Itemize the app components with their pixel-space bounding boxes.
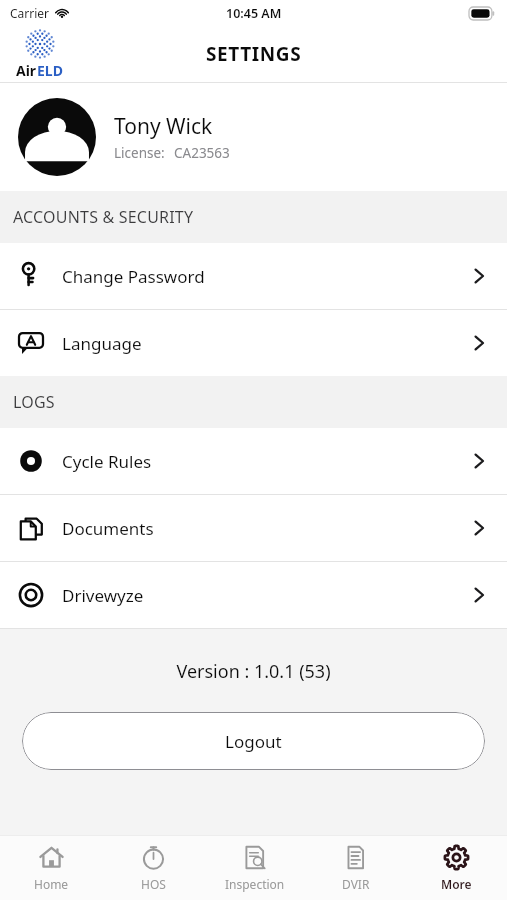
- staticText: Carrier: [10, 5, 50, 21]
- staticText: ACCOUNTS & SECURITY: [13, 206, 194, 228]
- button[interactable]: Change Password: [0, 243, 507, 309]
- staticText: License:: [114, 144, 165, 162]
- staticText: LOGS: [13, 391, 55, 413]
- staticText: ELD: [37, 61, 63, 80]
- staticText: More: [441, 876, 472, 892]
- button[interactable]: Language: [0, 310, 507, 376]
- staticText: Tony Wick: [114, 112, 213, 141]
- staticText: Logout: [225, 730, 282, 753]
- staticText: Home: [34, 876, 69, 892]
- staticText: Version : 1.0.1 (53): [176, 659, 331, 684]
- staticText: Cycle Rules: [62, 450, 152, 473]
- staticText: Drivewyze: [62, 584, 144, 607]
- button[interactable]: HOS: [102, 836, 204, 900]
- staticText: SETTINGS: [206, 41, 302, 67]
- staticText: Inspection: [225, 876, 285, 892]
- button[interactable]: Inspection: [204, 836, 305, 900]
- button[interactable]: Home: [0, 836, 102, 900]
- button[interactable]: Logout: [22, 712, 485, 770]
- button[interactable]: Documents: [0, 495, 507, 561]
- button[interactable]: DVIR: [305, 836, 406, 900]
- button[interactable]: Drivewyze: [0, 562, 507, 628]
- staticText: CA23563: [174, 144, 230, 162]
- button[interactable]: Cycle Rules: [0, 428, 507, 494]
- button[interactable]: More: [406, 836, 507, 900]
- staticText: HOS: [141, 876, 166, 892]
- staticText: Change Password: [62, 265, 205, 288]
- staticText: DVIR: [342, 876, 370, 892]
- staticText: Documents: [62, 517, 154, 540]
- staticText: Air: [16, 61, 37, 80]
- staticText: Language: [62, 332, 142, 355]
- staticText: 10:45 AM: [226, 5, 282, 22]
